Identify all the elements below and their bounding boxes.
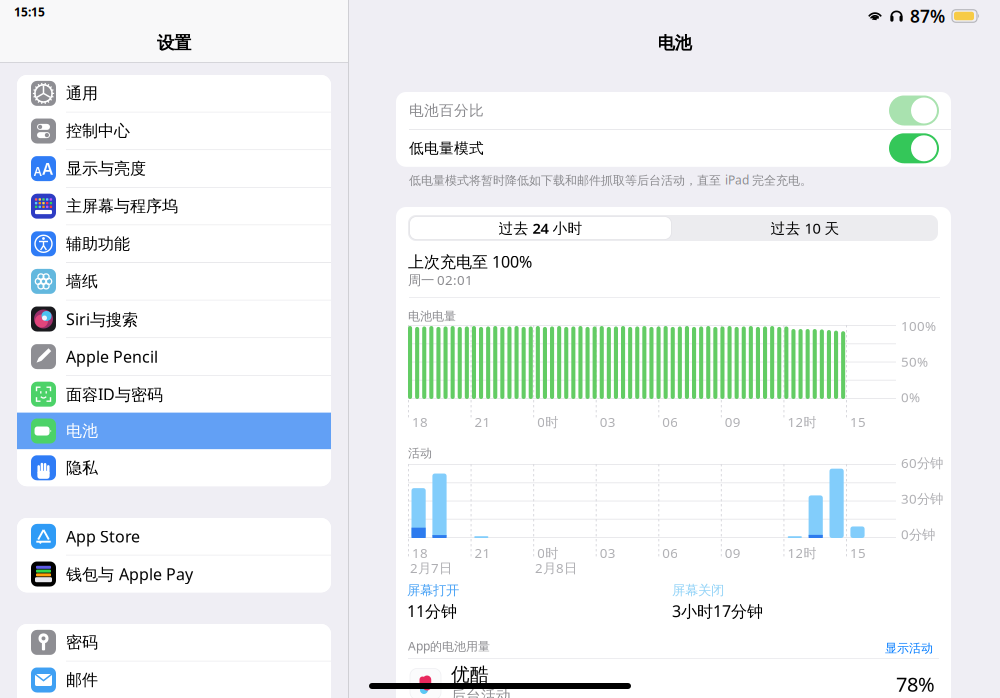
button[interactable]: 屏幕关闭 — [672, 582, 892, 622]
staticText: 15:15 — [14, 4, 45, 20]
staticText: 0% — [901, 388, 920, 406]
staticText: 87% — [910, 4, 945, 27]
button[interactable]: 过去 24 小时 — [409, 216, 671, 239]
staticText: 电池电量 — [408, 309, 456, 324]
button[interactable]: 过去 10 天 — [674, 216, 936, 239]
staticText: 3小时17分钟 — [672, 600, 763, 622]
staticText: 21 — [475, 544, 491, 562]
staticText: 0分钟 — [901, 525, 935, 543]
staticText: 03 — [600, 413, 616, 431]
staticText: 辅助功能 — [66, 234, 130, 254]
staticText: 显示活动 — [885, 641, 933, 656]
staticText: A — [34, 163, 42, 179]
button[interactable]: 通用 — [17, 75, 331, 112]
button[interactable]: 低电量模式 — [396, 130, 951, 167]
staticText: 12时 — [787, 413, 816, 431]
staticText: 过去 24 小时 — [498, 218, 582, 238]
staticText: 面容ID与密码 — [66, 384, 163, 405]
staticText: 隐私 — [66, 458, 98, 478]
staticText: 通用 — [66, 84, 98, 103]
staticText: 上次充电至 100% — [408, 251, 532, 272]
staticText: 0时 — [537, 544, 558, 562]
staticText: 11分钟 — [407, 600, 457, 622]
staticText: 60分钟 — [901, 454, 943, 472]
staticText: 邮件 — [66, 670, 98, 690]
staticText: 15 — [850, 544, 866, 562]
staticText: 电池百分比 — [409, 101, 484, 119]
staticText: App的电池用量 — [408, 638, 490, 654]
staticText: 低电量模式将暂时降低如下载和邮件抓取等后台活动，直至 iPad 完全充电。 — [409, 172, 812, 188]
staticText: 优酷 — [451, 663, 489, 686]
staticText: 周一 02:01 — [408, 271, 473, 289]
staticText: 50% — [901, 353, 928, 370]
button[interactable]: 辅助功能 — [17, 225, 331, 262]
staticText: Siri与搜索 — [66, 308, 138, 330]
staticText: 后台活动 — [451, 687, 511, 698]
button[interactable]: 邮件 — [17, 662, 331, 698]
staticText: 屏幕打开 — [407, 582, 459, 598]
button[interactable]: Apple Pencil — [17, 338, 331, 375]
staticText: 03 — [600, 544, 616, 562]
staticText: 30分钟 — [901, 490, 943, 507]
staticText: 2月7日 — [410, 559, 452, 577]
staticText: 09 — [725, 544, 741, 562]
staticText: 过去 10 天 — [770, 218, 839, 238]
staticText: App Store — [66, 526, 140, 547]
button[interactable]: 显示活动 — [885, 641, 933, 656]
staticText: 2月8日 — [535, 559, 577, 577]
button[interactable]: 钱包与 Apple Pay — [17, 556, 331, 592]
button[interactable]: 墙纸 — [17, 263, 331, 300]
staticText: 18 — [412, 413, 428, 431]
staticText: 电池 — [66, 421, 98, 441]
button[interactable]: 密码 — [17, 624, 331, 661]
button[interactable]: App Store — [17, 518, 331, 555]
staticText: 主屏幕与程序坞 — [66, 196, 178, 216]
staticText: 06 — [662, 544, 678, 562]
staticText: 屏幕关闭 — [672, 582, 724, 598]
button[interactable]: A — [17, 150, 331, 187]
staticText: 设置 — [157, 32, 191, 54]
staticText: 78% — [896, 671, 935, 697]
staticText: 控制中心 — [66, 121, 130, 141]
button[interactable]: 优酷 — [396, 659, 951, 698]
staticText: 钱包与 Apple Pay — [66, 563, 193, 585]
staticText: 15 — [850, 413, 866, 431]
staticText: 密码 — [66, 633, 98, 652]
button[interactable]: Siri与搜索 — [17, 301, 331, 337]
button[interactable]: 屏幕打开 — [407, 582, 587, 622]
staticText: 12时 — [787, 544, 816, 562]
button[interactable]: 面容ID与密码 — [17, 376, 331, 413]
button[interactable]: 电池 — [17, 413, 331, 449]
staticText: 0时 — [537, 413, 558, 431]
staticText: 低电量模式 — [409, 139, 484, 157]
staticText: 电池 — [657, 32, 691, 54]
staticText: Apple Pencil — [66, 346, 158, 367]
button[interactable]: 主屏幕与程序坞 — [17, 188, 331, 225]
staticText: 06 — [662, 413, 678, 431]
button[interactable]: 控制中心 — [17, 113, 331, 149]
staticText: 墙纸 — [66, 272, 98, 291]
button[interactable]: 电池百分比 — [396, 92, 951, 129]
staticText: 09 — [725, 413, 741, 431]
staticText: 18 — [412, 544, 428, 562]
staticText: 100% — [901, 317, 936, 335]
staticText: 21 — [475, 413, 491, 431]
staticText: 活动 — [408, 446, 432, 461]
staticText: A — [42, 158, 53, 179]
staticText: 显示与亮度 — [66, 159, 146, 178]
button[interactable]: 隐私 — [17, 449, 331, 486]
